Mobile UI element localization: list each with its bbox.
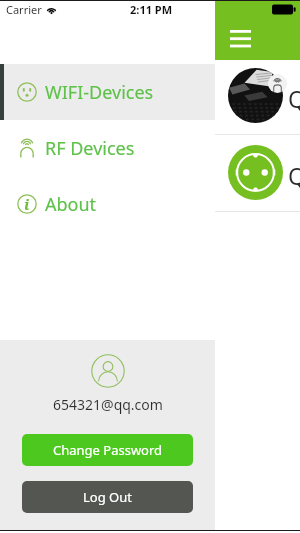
staticText: i	[24, 194, 30, 214]
staticText: WIFI-Devices	[45, 80, 154, 105]
button[interactable]: WIFI-Devices	[0, 64, 215, 120]
staticText: RF Devices	[45, 136, 135, 161]
staticText: Change Password	[53, 441, 163, 459]
button[interactable]: Change Password	[22, 434, 193, 466]
button[interactable]: RF Devices	[0, 120, 215, 176]
staticText: Q	[288, 160, 300, 191]
staticText: 2:11 PM	[130, 2, 173, 17]
button[interactable]: Q	[0, 63, 300, 134]
staticText: About	[45, 192, 97, 217]
staticText: Log Out	[83, 488, 132, 506]
button[interactable]: Log Out	[22, 481, 193, 513]
button[interactable]: Q	[0, 140, 300, 211]
staticText: Carrier	[6, 2, 42, 17]
staticText: Q	[288, 83, 300, 114]
button[interactable]: Open navigation menu	[224, 22, 256, 54]
button[interactable]: i	[0, 176, 215, 232]
staticText: 654321@qq.com	[53, 395, 163, 414]
